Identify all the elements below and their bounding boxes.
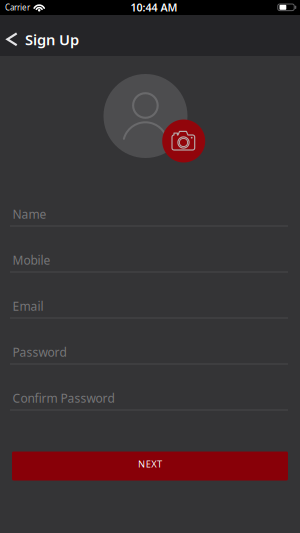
staticText: Password — [12, 344, 66, 360]
staticText: Sign Up — [25, 30, 79, 49]
staticText: NEXT — [138, 458, 162, 470]
staticText: Carrier — [5, 2, 30, 13]
staticText: 10:44 AM — [130, 0, 177, 14]
staticText: Email — [12, 298, 43, 314]
staticText: Mobile — [12, 252, 50, 268]
staticText: Name — [12, 206, 46, 222]
staticText: Confirm Password — [12, 390, 114, 406]
button[interactable]: Add Photo — [162, 119, 205, 162]
button[interactable]: Back — [2, 28, 20, 50]
button[interactable]: NEXT — [12, 451, 288, 480]
